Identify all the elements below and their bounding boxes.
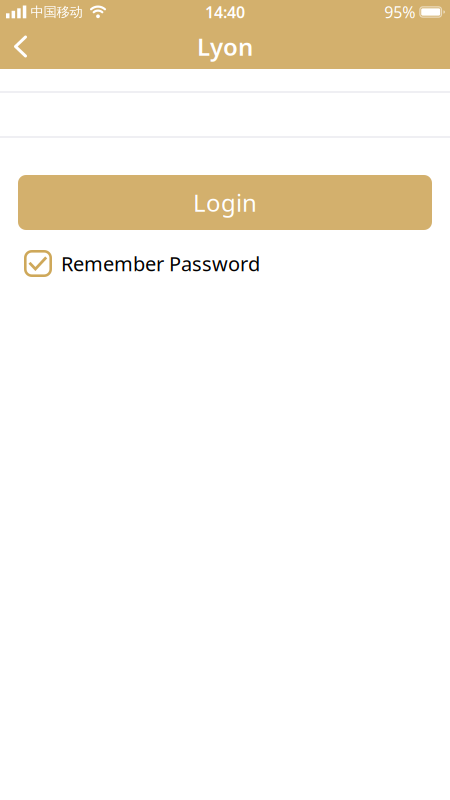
button[interactable]: Login: [18, 175, 432, 230]
staticText: Remember Password: [61, 250, 260, 277]
button[interactable]: Back: [0, 24, 27, 68]
staticText: Login: [193, 187, 257, 218]
staticText: 14:40: [205, 1, 245, 23]
button[interactable]: Password: [0, 93, 450, 138]
staticText: 中国移动: [30, 4, 82, 20]
staticText: Lyon: [197, 31, 253, 62]
staticText: 95%: [384, 1, 415, 23]
button[interactable]: Remember Password: [24, 250, 260, 277]
button[interactable]: Username: [0, 69, 450, 93]
